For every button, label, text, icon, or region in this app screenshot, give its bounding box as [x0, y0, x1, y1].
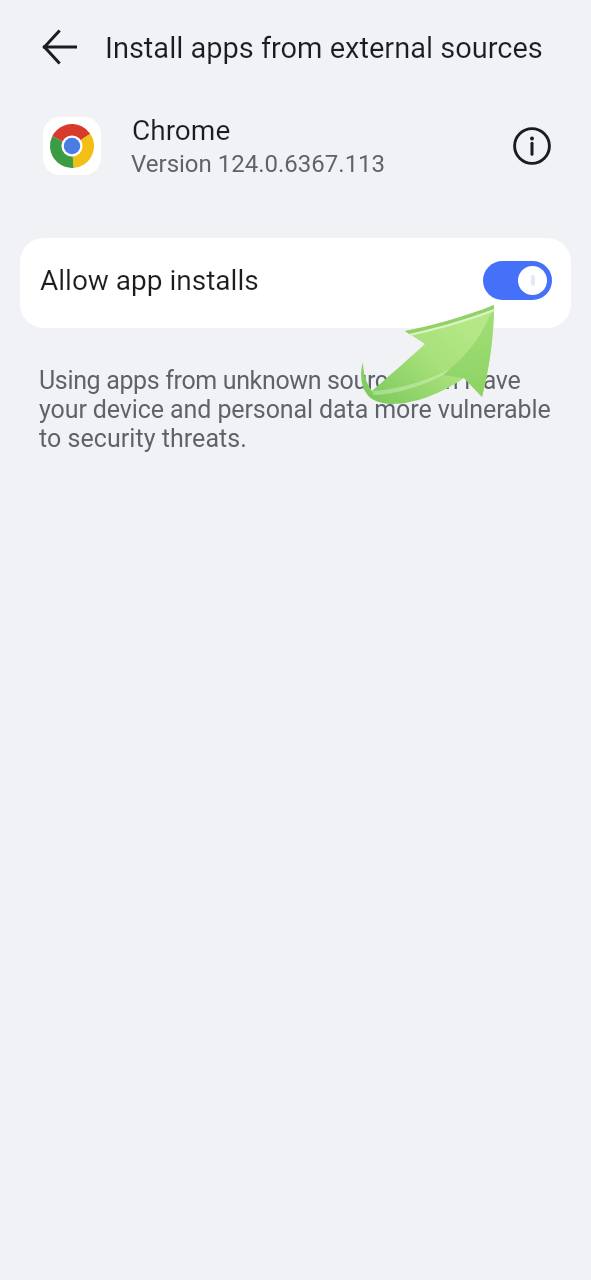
button[interactable]: Allow app installs	[20, 238, 571, 328]
staticText: Version 124.0.6367.113	[131, 150, 386, 178]
staticText: Chrome	[132, 114, 231, 147]
staticText: your device and personal data more vulne…	[39, 395, 551, 424]
staticText: Allow app installs	[40, 264, 259, 297]
button[interactable]: Back	[38, 25, 82, 69]
staticText: to security threats.	[39, 424, 247, 453]
staticText: Using apps from unknown sources can leav…	[39, 366, 521, 395]
staticText: Install apps from external sources	[105, 31, 543, 65]
button[interactable]: App info	[509, 123, 555, 169]
